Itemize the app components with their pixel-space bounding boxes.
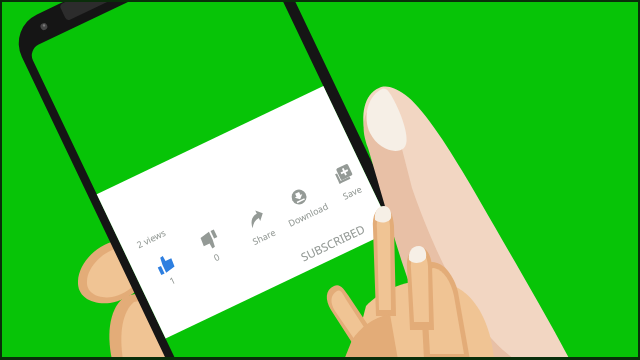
button[interactable]: Video actions — [0, 0, 640, 360]
